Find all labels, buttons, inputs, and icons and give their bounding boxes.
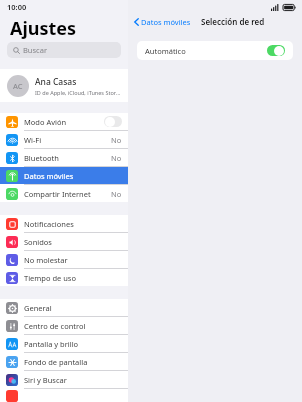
staticText: Automático — [145, 46, 186, 56]
button[interactable]: Bluetooth — [0, 149, 128, 166]
button[interactable]: AC — [0, 69, 128, 102]
staticText: No — [111, 153, 122, 163]
staticText: Ajustes — [10, 16, 77, 41]
staticText: Notificaciones — [24, 219, 122, 229]
staticText: Modo Avión — [24, 117, 104, 127]
button[interactable]: No molestar — [0, 251, 128, 268]
button[interactable]: On — [267, 45, 285, 56]
button[interactable]: Pantalla y brillo — [0, 335, 128, 352]
staticText: Datos móviles — [141, 17, 191, 27]
staticText: Bluetooth — [24, 153, 111, 163]
staticText: No — [111, 135, 122, 145]
button[interactable]: General — [0, 299, 128, 316]
staticText: General — [24, 303, 122, 313]
button[interactable]: Sonidos — [0, 233, 128, 250]
button[interactable] — [0, 389, 128, 402]
button[interactable]: Tiempo de uso — [0, 269, 128, 286]
button[interactable]: Fondo de pantalla — [0, 353, 128, 370]
staticText: AC — [13, 81, 23, 91]
button[interactable]: Off — [104, 116, 122, 127]
staticText: Siri y Buscar — [24, 375, 122, 385]
button[interactable]: Datos móviles — [132, 17, 193, 27]
staticText: No — [111, 189, 122, 199]
staticText: Compartir Internet — [24, 189, 111, 199]
button[interactable]: Modo Avión — [0, 113, 128, 130]
button[interactable]: Wi-Fi — [0, 131, 128, 148]
staticText: ID de Apple, iCloud, iTunes Store… — [35, 89, 121, 96]
button[interactable]: Buscar — [7, 42, 121, 58]
button[interactable]: Centro de control — [0, 317, 128, 334]
staticText: 10:00 — [7, 2, 27, 12]
staticText: Buscar — [23, 45, 48, 55]
button[interactable]: Notificaciones — [0, 215, 128, 232]
button[interactable]: Datos móviles — [0, 167, 128, 184]
button[interactable]: Compartir Internet — [0, 185, 128, 202]
staticText: Tiempo de uso — [24, 273, 122, 283]
staticText: Fondo de pantalla — [24, 357, 122, 367]
staticText: Centro de control — [24, 321, 122, 331]
staticText: Sonidos — [24, 237, 122, 247]
staticText: Wi-Fi — [24, 135, 111, 145]
staticText: Pantalla y brillo — [24, 339, 122, 349]
staticText: Ana Casas — [35, 76, 77, 88]
button[interactable]: Siri y Buscar — [0, 371, 128, 388]
button[interactable]: Automático — [137, 41, 293, 60]
staticText: Selección de red — [201, 16, 265, 27]
staticText: No molestar — [24, 255, 122, 265]
staticText: Datos móviles — [24, 171, 122, 181]
